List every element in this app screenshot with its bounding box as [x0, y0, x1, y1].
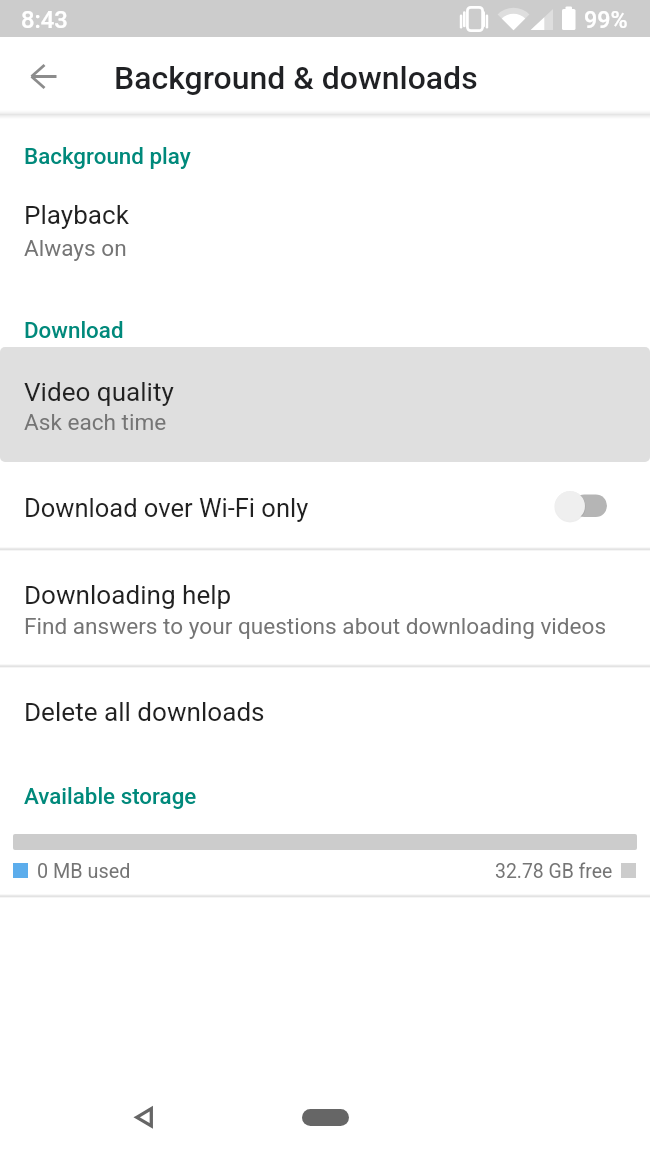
- staticText: 0 MB used: [37, 860, 131, 883]
- staticText: Downloading help: [24, 580, 232, 611]
- other: Wi-Fi: [496, 4, 531, 33]
- staticText: Always on: [24, 235, 127, 261]
- button[interactable]: Download over Wi-Fi only, off: [551, 489, 607, 523]
- button[interactable]: Back: [124, 1097, 164, 1137]
- staticText: 32.78 GB free: [495, 860, 613, 883]
- button[interactable]: Home: [293, 1100, 357, 1134]
- button[interactable]: Navigate up: [20, 52, 68, 100]
- staticText: Background play: [24, 143, 191, 169]
- button[interactable]: Video quality: [0, 347, 650, 462]
- staticText: Background & downloads: [114, 59, 478, 97]
- button[interactable]: Downloading help: [0, 549, 650, 666]
- staticText: Find answers to your questions about dow…: [24, 613, 607, 639]
- other: Battery 99 percent: [559, 4, 579, 33]
- staticText: Video quality: [24, 377, 174, 408]
- button[interactable]: Playback: [0, 185, 650, 279]
- staticText: 8:43: [21, 6, 68, 34]
- staticText: Download over Wi-Fi only: [24, 493, 309, 523]
- staticText: Delete all downloads: [24, 697, 265, 728]
- staticText: Available storage: [24, 783, 197, 809]
- staticText: Ask each time: [24, 409, 167, 435]
- button[interactable]: Download over Wi-Fi only: [0, 462, 650, 549]
- other: Ringer vibrate: [458, 4, 490, 33]
- staticText: Download: [24, 317, 124, 343]
- staticText: 99%: [584, 6, 628, 33]
- other: Mobile signal: [529, 4, 556, 33]
- staticText: Playback: [24, 200, 129, 231]
- button[interactable]: Delete all downloads: [0, 667, 650, 755]
